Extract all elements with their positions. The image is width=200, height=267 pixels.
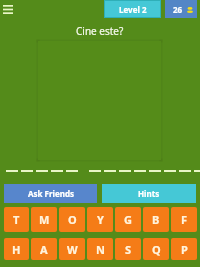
button[interactable]: W (59, 238, 85, 260)
button[interactable]: Y (87, 207, 113, 232)
staticText: F (181, 212, 188, 227)
button[interactable]: 26 (165, 0, 197, 18)
staticText: 26 (173, 4, 183, 15)
staticText: Ask Friends (28, 188, 74, 199)
staticText: Cine este? (76, 24, 124, 38)
button[interactable]: A (31, 238, 57, 260)
button[interactable]: Ask Friends (4, 184, 97, 203)
staticText: S (125, 242, 132, 257)
button[interactable]: Level 2 (104, 0, 161, 18)
button[interactable]: H (4, 238, 29, 260)
button[interactable]: G (115, 207, 141, 232)
staticText: A (40, 242, 48, 257)
button[interactable]: T (4, 207, 29, 232)
staticText: P (181, 242, 188, 257)
staticText: O (68, 212, 77, 227)
button[interactable]: N (87, 238, 113, 260)
staticText: B (152, 212, 160, 227)
staticText: Hints (138, 188, 160, 199)
staticText: Y (97, 212, 104, 227)
staticText: N (96, 242, 105, 257)
button[interactable]: B (143, 207, 169, 232)
button[interactable]: O (59, 207, 85, 232)
staticText: Level 2 (119, 4, 147, 15)
staticText: W (67, 242, 78, 257)
button[interactable]: Menu (3, 5, 13, 14)
staticText: G (124, 212, 132, 227)
button[interactable]: Hints (102, 184, 196, 203)
button[interactable]: P (171, 238, 197, 260)
button[interactable]: M (31, 207, 57, 232)
staticText: H (12, 242, 21, 257)
button[interactable]: Q (143, 238, 169, 260)
button[interactable]: F (171, 207, 197, 232)
button[interactable]: S (115, 238, 141, 260)
staticText: M (39, 212, 50, 227)
staticText: T (13, 212, 20, 227)
staticText: Q (152, 242, 161, 257)
